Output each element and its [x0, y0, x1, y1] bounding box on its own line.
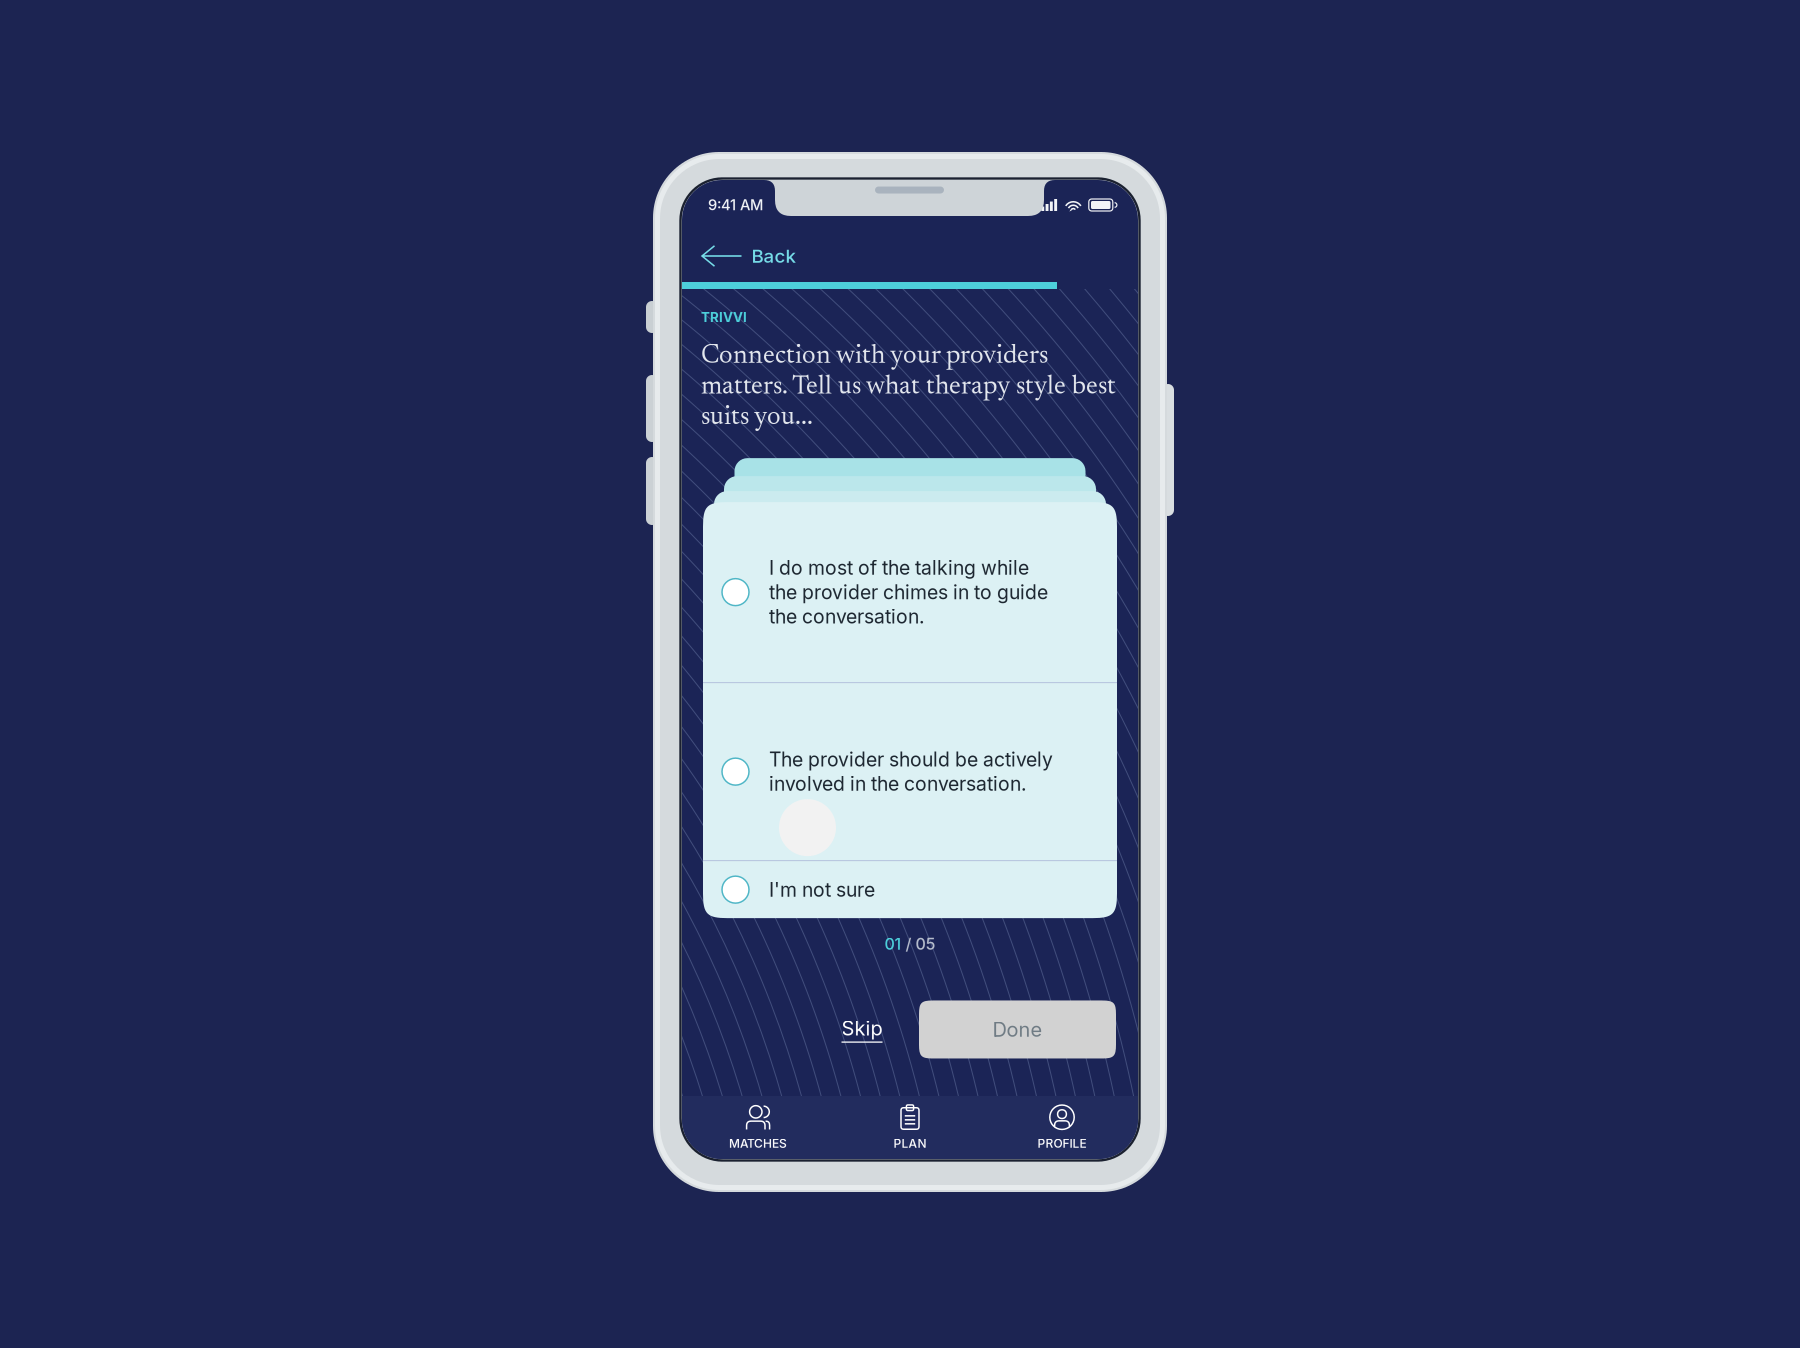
staticText: 01	[884, 934, 901, 953]
staticText: I'm not sure	[769, 878, 875, 901]
staticText: the provider chimes in to guide	[769, 580, 1048, 604]
staticText: MATCHES	[729, 1136, 787, 1151]
button[interactable]: PLAN	[834, 1096, 986, 1159]
button[interactable]: I'm not sure	[703, 861, 1117, 918]
staticText: involved in the conversation.	[769, 772, 1027, 795]
button[interactable]: The provider should be actively	[703, 683, 1117, 860]
staticText: Done	[992, 1017, 1042, 1042]
staticText: 9:41 AM	[708, 196, 763, 214]
staticText: TRIVVI	[701, 309, 747, 325]
staticText: PROFILE	[1037, 1136, 1086, 1151]
button[interactable]: I do most of the talking while	[703, 502, 1117, 682]
staticText: I do most of the talking while	[769, 556, 1029, 579]
button[interactable]: PROFILE	[986, 1096, 1138, 1159]
button[interactable]: Back	[682, 230, 809, 282]
staticText: Connection with your providers	[701, 343, 1048, 370]
staticText: PLAN	[893, 1136, 926, 1151]
staticText: / 05	[901, 934, 935, 953]
staticText: the conversation.	[769, 605, 925, 628]
staticText: The provider should be actively	[769, 748, 1053, 771]
staticText: matters. Tell us what therapy style best	[701, 374, 1116, 400]
button[interactable]: Done	[919, 1000, 1116, 1058]
staticText: suits you...	[701, 404, 813, 431]
button[interactable]: Skip	[822, 1000, 902, 1058]
staticText: Skip	[841, 1016, 882, 1040]
staticText: Back	[751, 245, 795, 267]
button[interactable]: MATCHES	[682, 1096, 834, 1159]
